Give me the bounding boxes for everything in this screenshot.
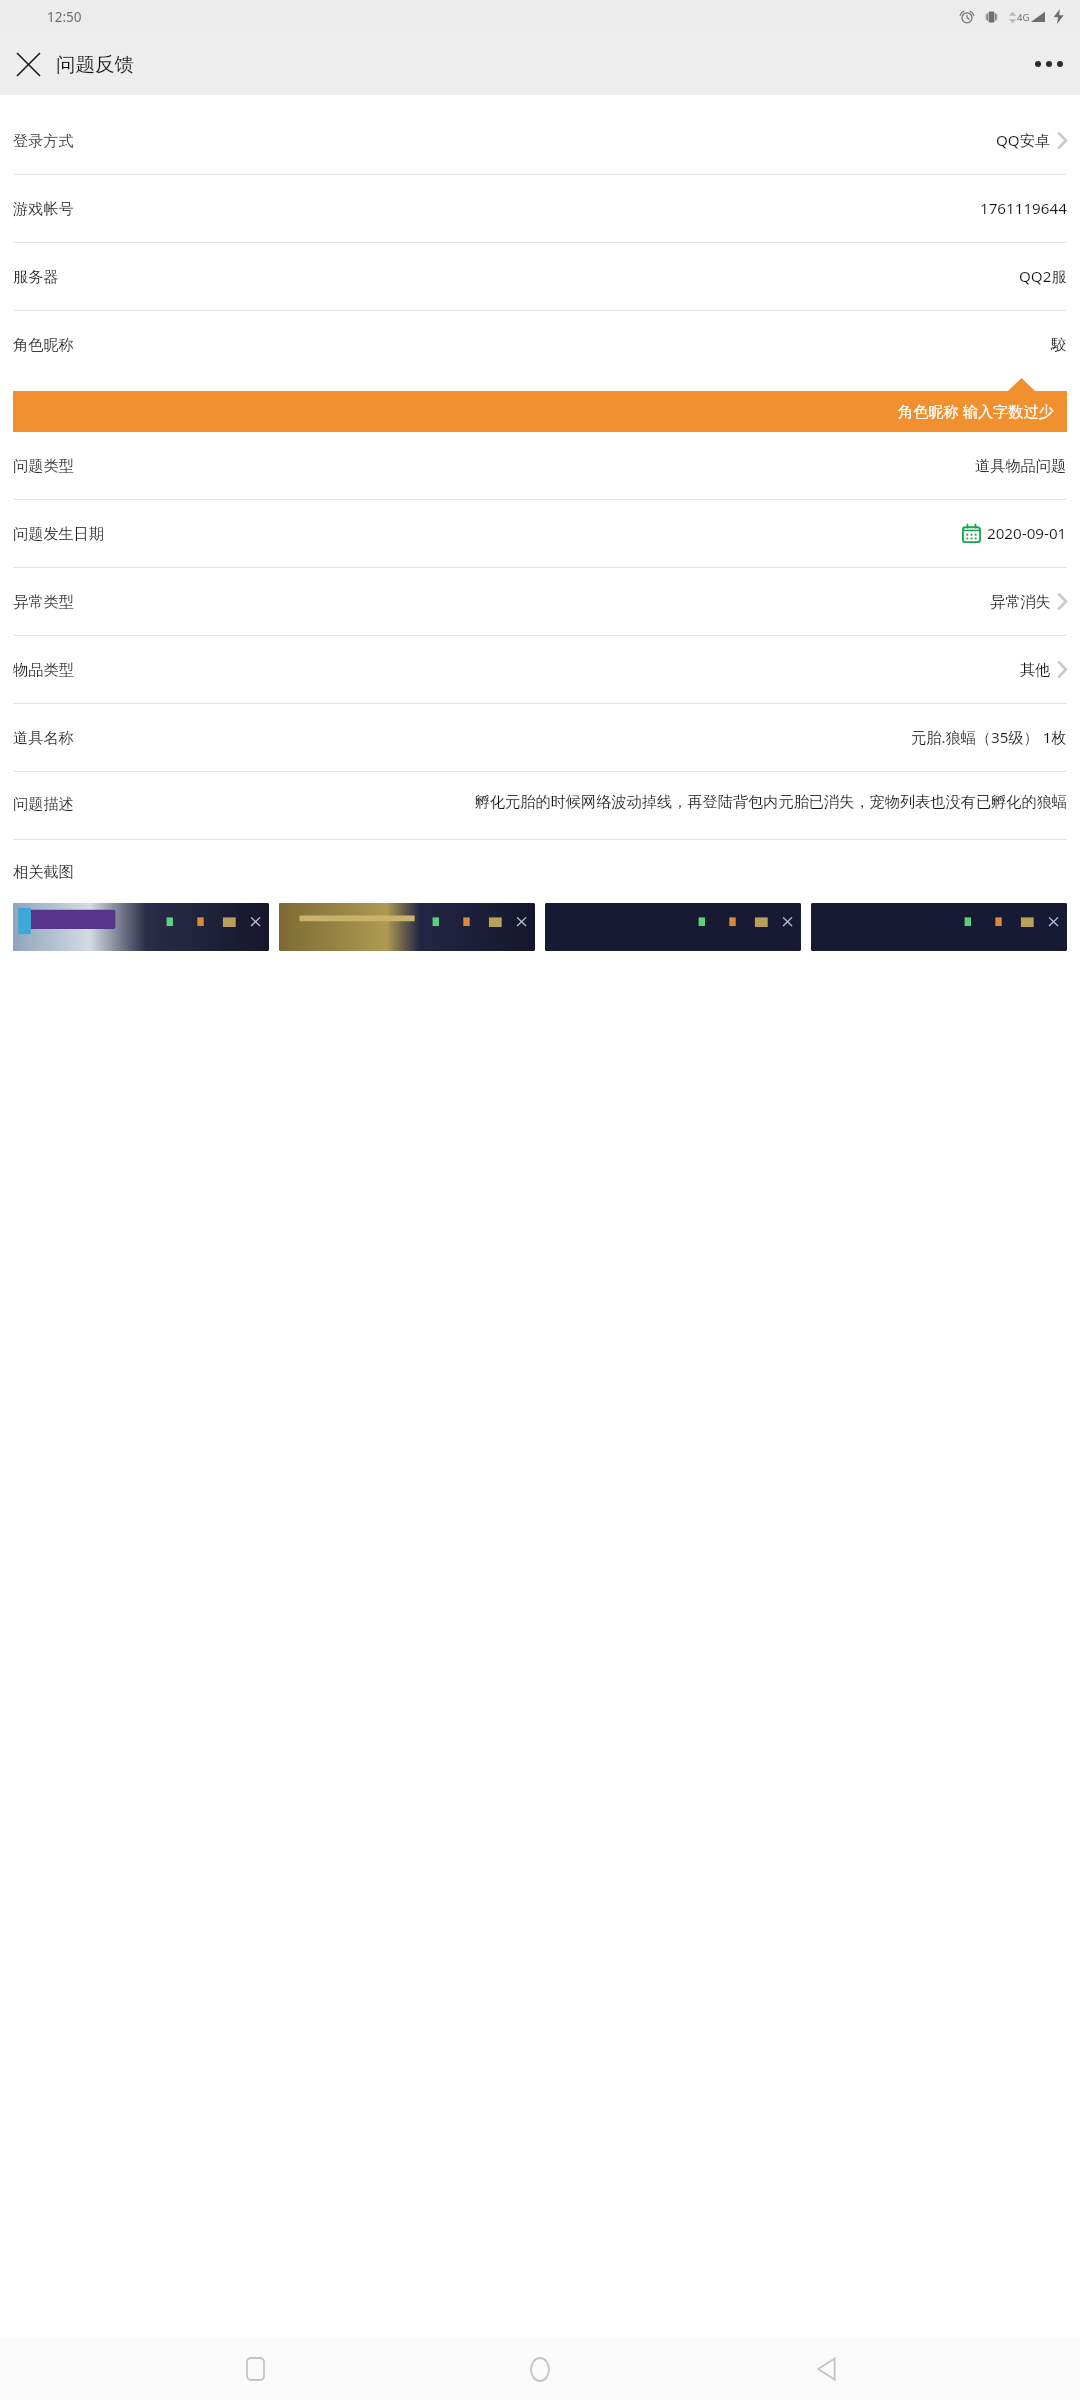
staticText: 4G xyxy=(1017,11,1030,24)
button[interactable]: 登录方式 xyxy=(0,107,1080,174)
staticText: 问题发生日期 xyxy=(13,524,105,543)
button[interactable]: 截图 4 xyxy=(811,903,1067,951)
staticText: 駮 xyxy=(1051,335,1067,354)
button[interactable]: 关闭 xyxy=(0,36,56,92)
staticText: 异常消失 xyxy=(990,592,1051,611)
button[interactable]: 截图 1 xyxy=(13,903,269,951)
button[interactable]: 服务器 xyxy=(0,243,1080,310)
staticText: 其他 xyxy=(1020,660,1051,679)
staticText: 2020-09-01 xyxy=(987,523,1067,544)
staticText: 游戏帐号 xyxy=(13,199,74,218)
staticText: 孵化元胎的时候网络波动掉线，再登陆背包内元胎已消失，宠物列表也没有已孵化的狼蝠 xyxy=(96,792,1067,811)
staticText: 问题反馈 xyxy=(56,52,134,77)
button[interactable]: 异常类型 xyxy=(0,568,1080,635)
staticText: 异常类型 xyxy=(13,592,74,611)
staticText: QQ安卓 xyxy=(996,130,1051,151)
staticText: 问题描述 xyxy=(13,794,74,813)
staticText: 道具物品问题 xyxy=(975,456,1067,475)
button[interactable]: 问题类型 xyxy=(0,432,1080,499)
button[interactable]: 更多选项 xyxy=(1018,33,1080,95)
staticText: 相关截图 xyxy=(13,862,74,881)
button[interactable]: 返回 xyxy=(795,2338,857,2400)
staticText: 角色昵称 输入字数过少 xyxy=(898,401,1054,422)
staticText: 角色昵称 xyxy=(13,335,74,354)
button[interactable]: 问题发生日期 xyxy=(0,500,1080,567)
staticText: 物品类型 xyxy=(13,660,74,679)
button[interactable]: 游戏帐号 xyxy=(0,175,1080,242)
staticText: 问题类型 xyxy=(13,456,74,475)
staticText: 登录方式 xyxy=(13,131,74,150)
button[interactable]: 最近任务 xyxy=(224,2338,286,2400)
staticText: 元胎.狼蝠（35级） 1枚 xyxy=(911,727,1067,748)
button[interactable]: 主页 xyxy=(509,2338,571,2400)
button[interactable]: 问题描述 xyxy=(0,772,1080,839)
button[interactable]: 截图 3 xyxy=(545,903,801,951)
staticText: 服务器 xyxy=(13,267,59,286)
staticText: 道具名称 xyxy=(13,728,74,747)
staticText: QQ2服 xyxy=(1019,266,1067,287)
button[interactable]: 角色昵称 xyxy=(0,311,1080,378)
staticText: 12:50 xyxy=(47,8,82,26)
staticText: 1761119644 xyxy=(980,198,1067,219)
button[interactable]: 物品类型 xyxy=(0,636,1080,703)
button[interactable]: 截图 2 xyxy=(279,903,535,951)
button[interactable]: 道具名称 xyxy=(0,704,1080,771)
